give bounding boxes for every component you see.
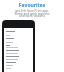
staticText: Favourites [0, 2, 64, 9]
staticText: get link from Print app. Some and work s… [2, 9, 62, 18]
